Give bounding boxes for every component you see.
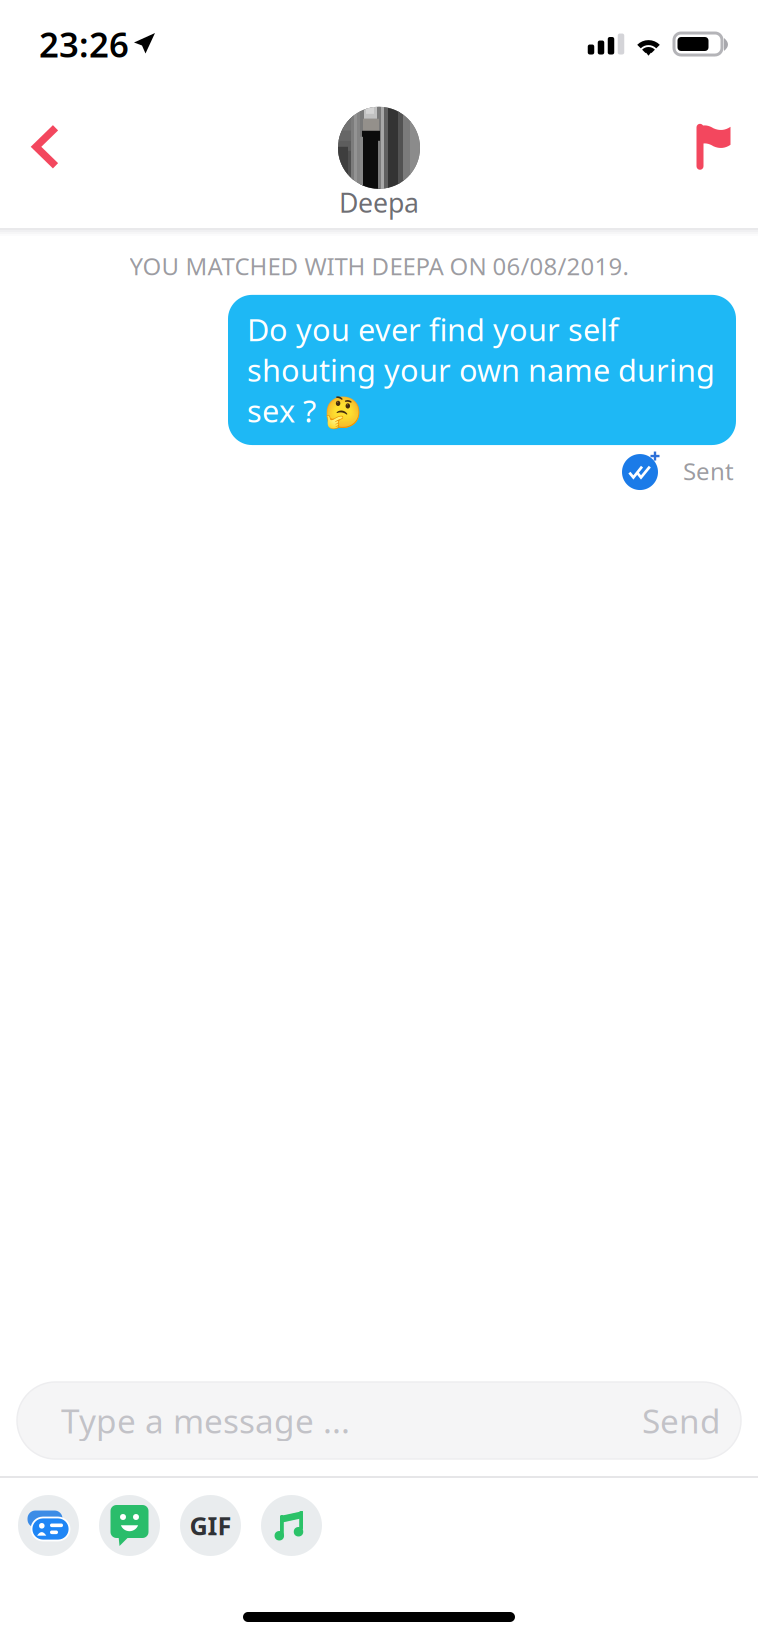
staticText: Type a message ... bbox=[61, 1398, 350, 1443]
staticText: GIF bbox=[189, 1509, 231, 1542]
staticText: 23:26 bbox=[39, 21, 129, 67]
button[interactable]: Music bbox=[261, 1495, 322, 1556]
button[interactable]: GIF bbox=[180, 1495, 241, 1556]
staticText: Sent bbox=[683, 455, 734, 487]
button[interactable]: Stickers bbox=[99, 1495, 160, 1556]
staticText: Deepa bbox=[339, 185, 419, 220]
button[interactable]: Back bbox=[1, 96, 87, 198]
staticText: Do you ever find your self shouting your… bbox=[247, 309, 715, 431]
button[interactable]: Contact card bbox=[18, 1495, 79, 1556]
staticText: YOU MATCHED WITH DEEPA ON 06/08/2019. bbox=[129, 250, 628, 282]
staticText: Send bbox=[642, 1398, 721, 1443]
button[interactable]: Report bbox=[672, 96, 758, 198]
button[interactable]: Type a message ... bbox=[0, 1359, 758, 1476]
button[interactable]: Deepa bbox=[338, 96, 420, 220]
